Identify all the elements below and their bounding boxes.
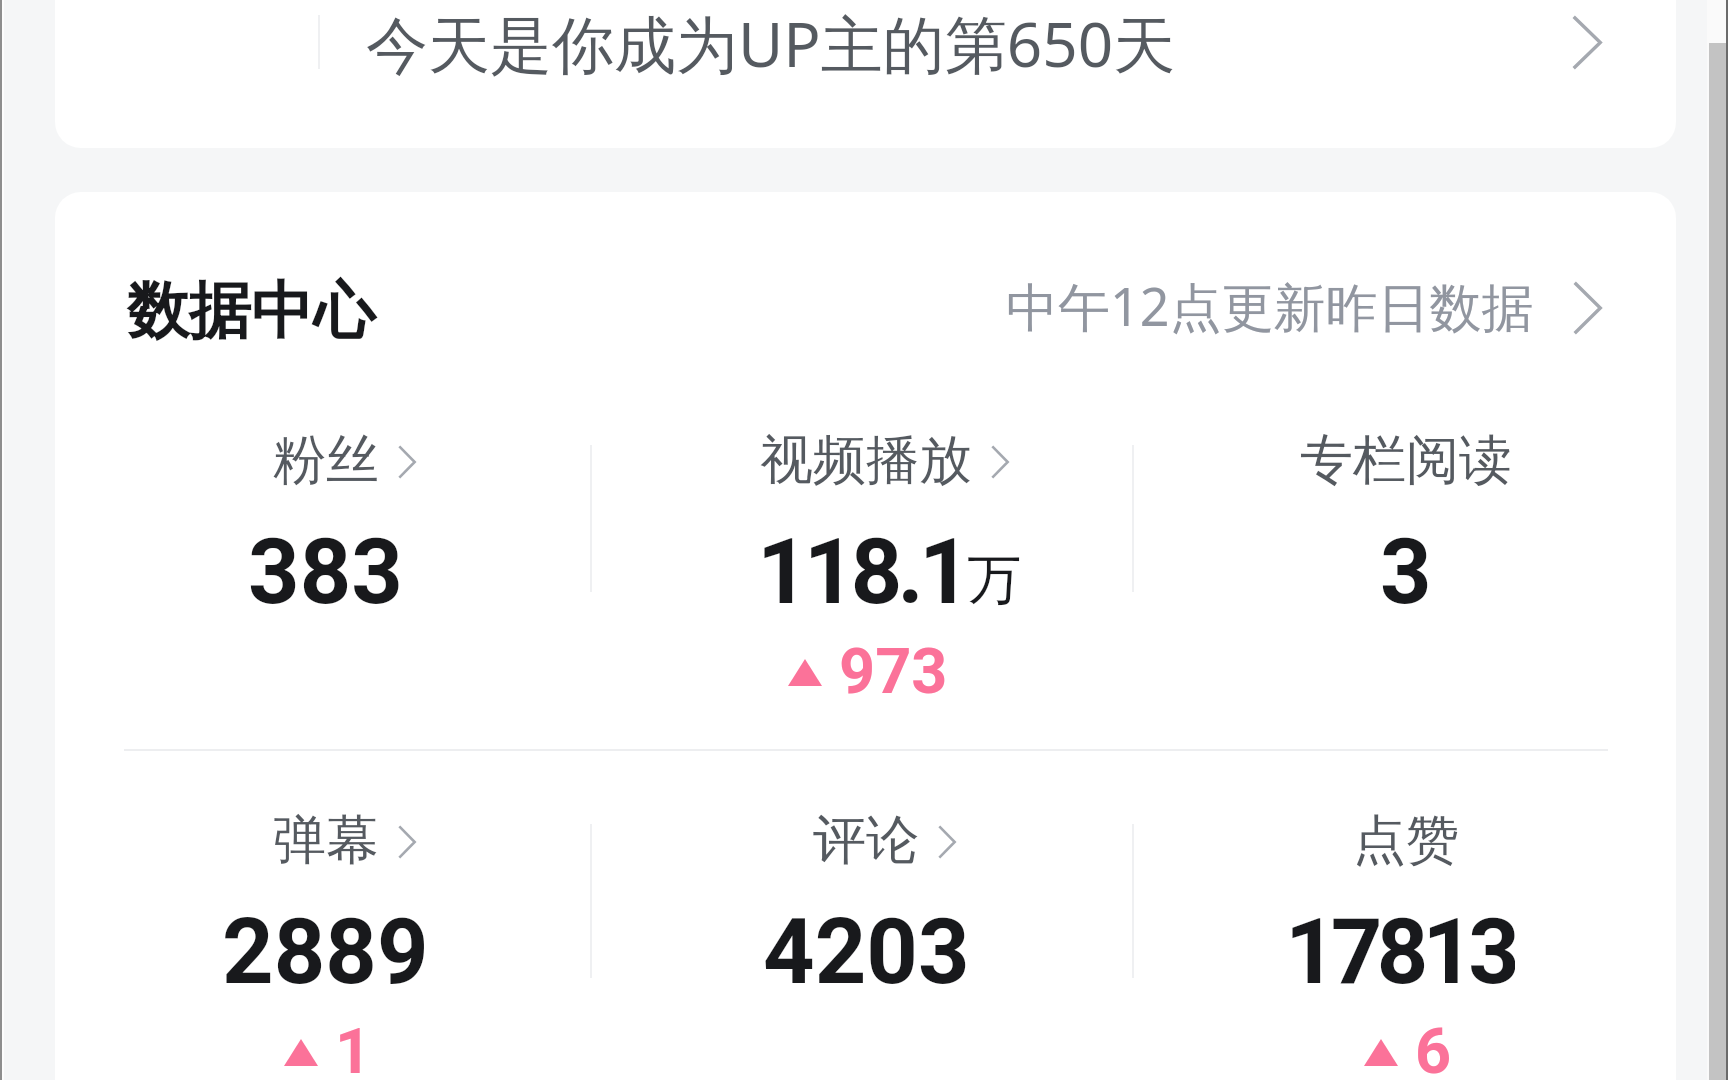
staticText: 万 <box>967 546 1021 614</box>
other: Open creator anniversary <box>1572 15 1602 70</box>
button[interactable]: 评论 <box>596 813 1136 1080</box>
other: Data update schedule <box>1573 281 1602 335</box>
button[interactable]: 弹幕 <box>55 813 596 1080</box>
staticText: 粉丝 <box>273 427 379 494</box>
button[interactable]: 专栏阅读 <box>1136 433 1676 749</box>
staticText: 中午12点更新昨日数据 <box>1006 270 1534 341</box>
staticText: 评论 <box>813 807 919 874</box>
staticText: 今天是你成为UP主的第650天 <box>366 1 1176 86</box>
button[interactable]: 粉丝 <box>55 433 596 749</box>
staticText: 弹幕 <box>273 807 379 874</box>
staticText: 383 <box>248 520 403 612</box>
staticText: 2889 <box>222 900 429 992</box>
button[interactable]: 今天是你成为UP主的第650天 <box>55 0 1676 148</box>
staticText: 4203 <box>763 900 970 992</box>
staticText: 17813 <box>1285 900 1515 992</box>
staticText: 1 <box>335 1015 372 1080</box>
staticText: 973 <box>839 635 948 709</box>
staticText: 专栏阅读 <box>1300 427 1512 494</box>
button[interactable]: 中午12点更新昨日数据 <box>933 232 1623 372</box>
button[interactable]: 视频播放 <box>596 433 1136 749</box>
staticText: 数据中心 <box>127 272 375 350</box>
staticText: 3 <box>1380 520 1432 612</box>
staticText: 118.1 <box>757 520 966 612</box>
staticText: 6 <box>1415 1015 1452 1080</box>
staticText: 视频播放 <box>760 427 972 494</box>
staticText: 点赞 <box>1353 807 1459 874</box>
button[interactable]: 点赞 <box>1136 813 1676 1080</box>
